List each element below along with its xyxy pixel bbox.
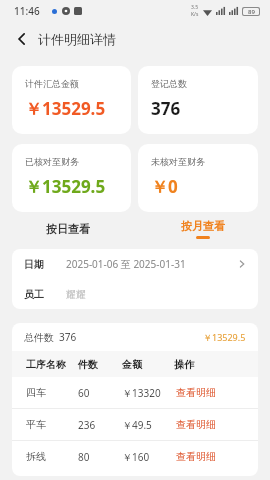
staticText: 3.5 (191, 4, 199, 11)
staticText: 操作 (174, 358, 194, 371)
staticText: 计件明细详情 (38, 31, 116, 47)
button[interactable]: 日期 (12, 249, 258, 279)
staticText: 工序名称 (26, 358, 78, 371)
staticText: 平车 (26, 418, 78, 431)
staticText: 总件数 (24, 331, 54, 344)
staticText: 查看明细 (176, 450, 216, 463)
staticText: 80 (78, 450, 122, 464)
button[interactable]: 已核对至财务 (12, 144, 131, 212)
button[interactable]: 员工 (12, 279, 258, 309)
staticText: 11:46 (14, 4, 40, 18)
staticText: 376 (59, 330, 77, 344)
staticText: 耀耀 (66, 288, 86, 301)
staticText: 按日查看 (46, 222, 90, 236)
staticText: 2025-01-06 至 2025-01-31 (66, 257, 186, 271)
staticText: ￥13320 (122, 386, 174, 400)
staticText: 已核对至财务 (25, 156, 79, 167)
staticText: ￥13529.5 (25, 97, 106, 120)
button[interactable]: 查看明细 (174, 382, 218, 403)
button[interactable]: 按日查看 (0, 212, 135, 246)
staticText: 376 (151, 97, 181, 120)
staticText: ￥13529.5 (203, 331, 246, 343)
staticText: 未核对至财务 (151, 156, 205, 167)
staticText: 查看明细 (176, 418, 216, 431)
button[interactable]: 计件汇总金额 (12, 66, 131, 134)
button[interactable]: 返回 (10, 27, 34, 51)
staticText: ￥13529.5 (25, 175, 106, 198)
staticText: 236 (78, 418, 122, 432)
staticText: ￥0 (151, 175, 178, 198)
staticText: 拆线 (26, 450, 78, 463)
staticText: 计件汇总金额 (25, 78, 79, 89)
button[interactable]: 按月查看 (135, 212, 270, 246)
staticText: 日期 (24, 258, 44, 271)
staticText: 件数 (78, 358, 122, 371)
staticText: 查看明细 (176, 386, 216, 399)
button[interactable]: 登记总数 (138, 66, 258, 134)
button[interactable]: 查看明细 (174, 414, 218, 435)
button[interactable]: 查看明细 (174, 446, 218, 467)
staticText: ￥160 (122, 450, 174, 464)
staticText: 89 (248, 8, 255, 15)
staticText: 四车 (26, 386, 78, 399)
staticText: 按月查看 (181, 219, 225, 233)
staticText: K/s (191, 11, 199, 18)
staticText: 登记总数 (151, 78, 187, 89)
staticText: 金额 (122, 358, 174, 371)
staticText: 60 (78, 386, 122, 400)
staticText: ￥49.5 (122, 418, 174, 432)
button[interactable]: 未核对至财务 (138, 144, 258, 212)
staticText: 员工 (24, 288, 44, 301)
